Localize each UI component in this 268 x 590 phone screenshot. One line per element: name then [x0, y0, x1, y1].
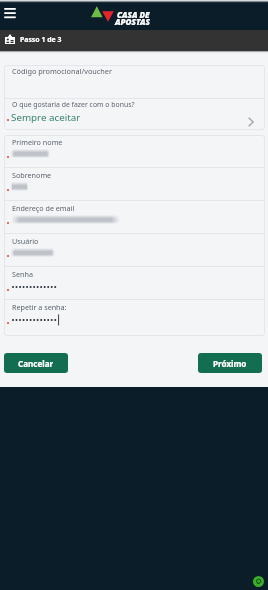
button[interactable]: Open chat support	[253, 576, 264, 587]
button[interactable]: Cancelar	[4, 353, 68, 373]
staticText: Cancelar	[18, 358, 54, 369]
staticText: Primeiro nome	[12, 137, 63, 147]
staticText: Repetir a senha:	[12, 302, 67, 312]
button[interactable]: Senha	[4, 267, 265, 300]
staticText: Senha	[12, 269, 33, 279]
staticText: Passo 1 de 3	[20, 35, 62, 44]
staticText: Sempre aceitar	[11, 111, 81, 124]
button[interactable]: Repetir a senha:	[4, 300, 265, 333]
button[interactable]: Endereço de email	[4, 201, 265, 234]
staticText: Sobrenome	[12, 170, 52, 180]
button[interactable]: Open navigation menu	[3, 6, 17, 20]
staticText: Endereço de email	[12, 203, 75, 213]
staticText: APOSTAS	[115, 16, 150, 27]
button[interactable]: Primeiro nome	[4, 135, 265, 168]
button[interactable]: Sobrenome	[4, 168, 265, 201]
staticText: Próximo	[213, 358, 247, 369]
staticText: CASA DE	[117, 9, 150, 20]
button[interactable]: O que gostaria de fazer com o bonus?	[4, 99, 265, 130]
staticText: O que gostaria de fazer com o bonus?	[12, 100, 135, 109]
button[interactable]: Usuário	[4, 234, 265, 267]
button[interactable]: Código promocional/voucher	[4, 65, 265, 98]
staticText: Usuário	[12, 236, 39, 246]
button[interactable]: Passo 1 de 3	[0, 30, 268, 51]
staticText: Código promocional/voucher	[12, 66, 112, 76]
button[interactable]: Próximo	[198, 353, 262, 373]
